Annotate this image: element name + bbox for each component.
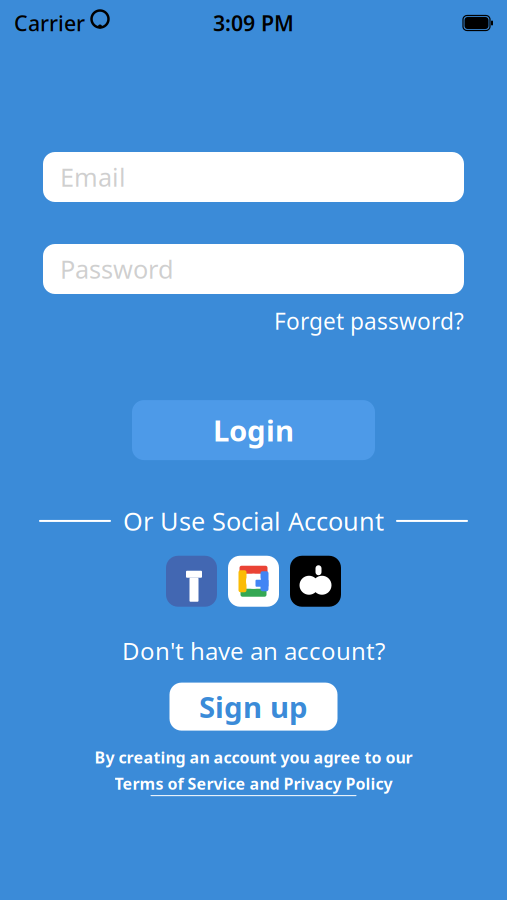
button[interactable]: Sign in with Google [228, 556, 279, 607]
staticText: Sign up [199, 687, 308, 726]
staticText: Forget password? [274, 306, 464, 336]
staticText: Or Use Social Account [123, 504, 384, 538]
button[interactable]: Sign in with Facebook [166, 556, 217, 607]
staticText: 3:09 PM [213, 9, 294, 37]
staticText: Login [213, 411, 294, 450]
staticText: Email [60, 160, 126, 194]
button[interactable]: Terms of Service and Privacy Policy [114, 773, 392, 796]
staticText: Password [60, 252, 174, 286]
button[interactable]: Forget password? [274, 306, 464, 336]
staticText: Terms of Service and Privacy Policy [114, 773, 392, 794]
staticText: By creating an account you agree to our [94, 747, 412, 768]
button[interactable]: Sign up [169, 683, 337, 731]
button[interactable]: Login [132, 400, 375, 460]
staticText: Carrier [14, 9, 85, 37]
button[interactable]: Sign in with Apple [290, 556, 341, 607]
staticText: Don't have an account? [122, 635, 385, 667]
